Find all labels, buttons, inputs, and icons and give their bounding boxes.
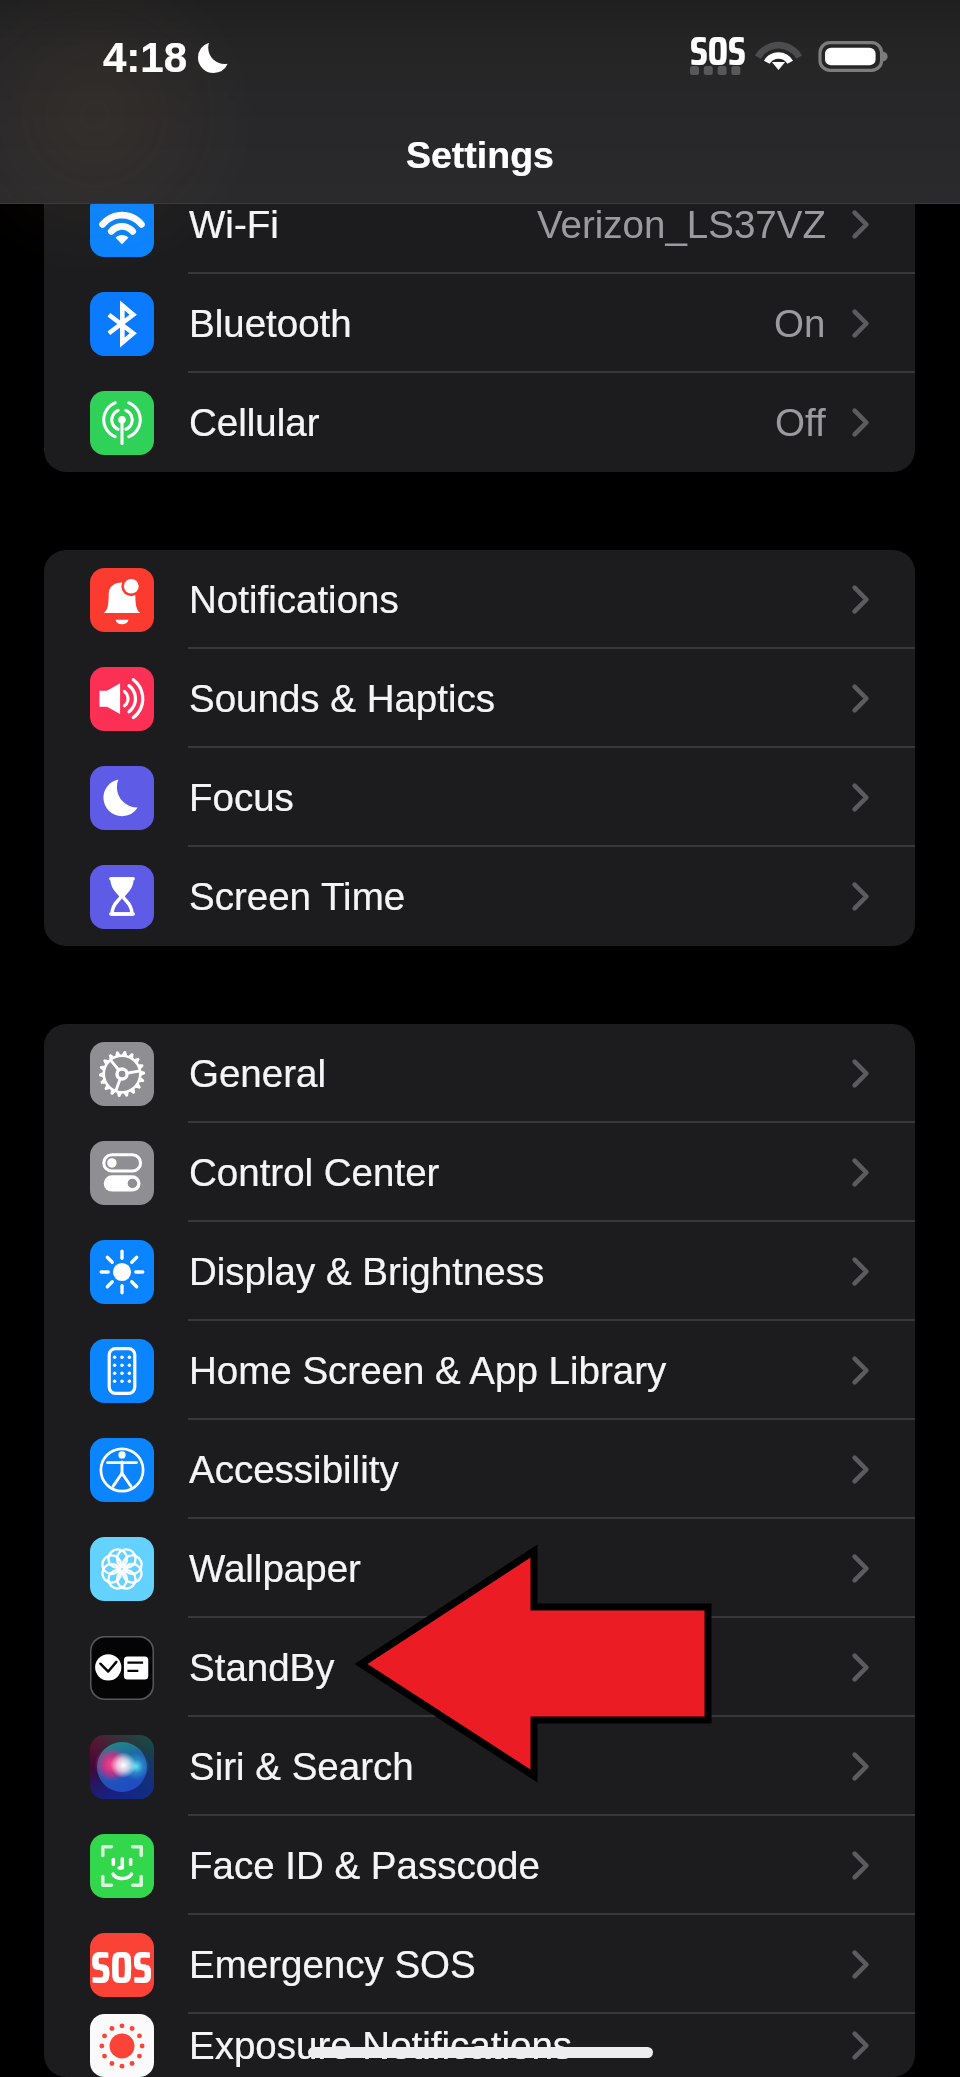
button[interactable]: Cellular	[44, 373, 915, 472]
other: Battery full	[820, 40, 890, 73]
staticText: Control Center	[189, 1151, 440, 1194]
staticText: Wallpaper	[189, 1547, 361, 1590]
staticText: General	[189, 1052, 326, 1095]
button[interactable]: Screen Time	[44, 847, 915, 946]
staticText: Settings	[406, 134, 554, 176]
staticText: Off	[775, 401, 826, 444]
staticText: On	[774, 302, 826, 345]
staticText: SOS	[690, 20, 746, 83]
staticText: Emergency SOS	[189, 1943, 476, 1986]
button[interactable]: Notifications	[44, 550, 915, 649]
staticText: Display & Brightness	[189, 1250, 545, 1293]
button[interactable]: Sounds & Haptics	[44, 649, 915, 748]
staticText: Screen Time	[189, 875, 406, 918]
button[interactable]: Accessibility	[44, 1420, 915, 1519]
staticText: Exposure Notifications	[189, 2024, 573, 2067]
other: Wi-Fi signal	[757, 37, 800, 70]
staticText: Home Screen & App Library	[189, 1349, 667, 1392]
staticText: StandBy	[189, 1646, 335, 1689]
staticText: Verizon_LS37VZ	[537, 203, 826, 246]
staticText: Wi-Fi	[189, 203, 279, 246]
button[interactable]: Face ID & Passcode	[44, 1816, 915, 1915]
button[interactable]: Siri & Search	[44, 1717, 915, 1816]
staticText: Focus	[189, 776, 294, 819]
button[interactable]: Wallpaper	[44, 1519, 915, 1618]
button[interactable]: Focus	[44, 748, 915, 847]
button[interactable]: Bluetooth	[44, 274, 915, 373]
button[interactable]: Exposure Notifications	[44, 2014, 915, 2077]
button[interactable]: General	[44, 1024, 915, 1123]
staticText: Siri & Search	[189, 1745, 414, 1788]
button[interactable]: Home Screen & App Library	[44, 1321, 915, 1420]
staticText: Cellular	[189, 401, 320, 444]
button[interactable]: Control Center	[44, 1123, 915, 1222]
button[interactable]: SOS	[44, 1915, 915, 2014]
staticText: Notifications	[189, 578, 399, 621]
staticText: 4:18	[103, 34, 188, 81]
staticText: Sounds & Haptics	[189, 677, 496, 720]
button[interactable]: Display & Brightness	[44, 1222, 915, 1321]
other: Do Not Disturb	[197, 41, 230, 74]
button[interactable]: StandBy	[44, 1618, 915, 1717]
staticText: Face ID & Passcode	[189, 1844, 540, 1887]
staticText: SOS	[91, 1933, 153, 1997]
button[interactable]: Wi-Fi	[44, 175, 915, 274]
staticText: Bluetooth	[189, 302, 352, 345]
staticText: Accessibility	[189, 1448, 399, 1491]
